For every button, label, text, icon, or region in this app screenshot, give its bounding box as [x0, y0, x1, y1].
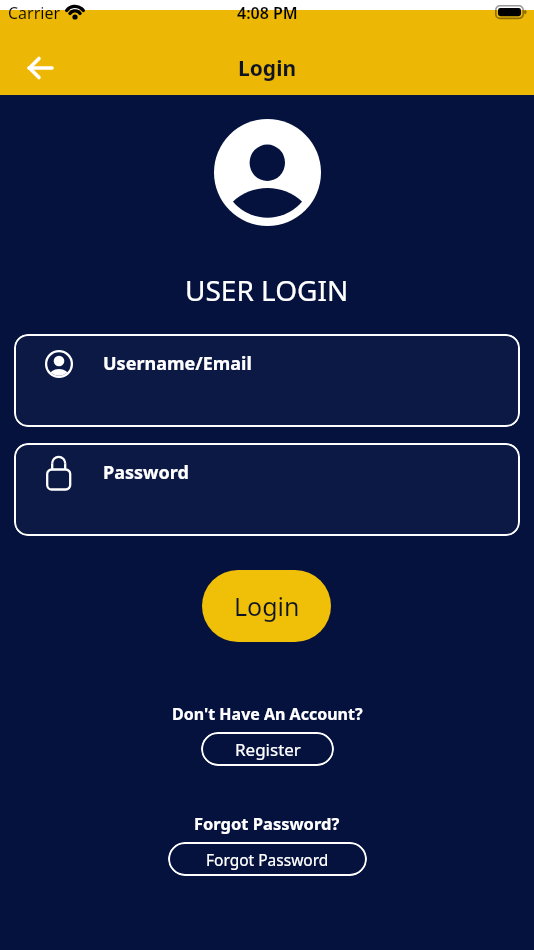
staticText: USER LOGIN: [185, 271, 349, 309]
staticText: Login: [238, 54, 297, 83]
staticText: Register: [235, 738, 301, 761]
staticText: Forgot Password: [206, 849, 329, 870]
staticText: Username/Email: [103, 351, 252, 376]
button[interactable]: Username/Email: [14, 334, 520, 427]
staticText: Password: [103, 460, 189, 485]
button[interactable]: Forgot Password: [168, 842, 367, 876]
button[interactable]: [27, 55, 54, 81]
button[interactable]: Register: [201, 732, 334, 766]
staticText: Forgot Password?: [194, 812, 340, 834]
staticText: Login: [234, 589, 300, 623]
button[interactable]: Password: [14, 443, 520, 536]
staticText: 4:08 PM: [237, 2, 298, 24]
staticText: Don't Have An Account?: [172, 703, 363, 725]
button[interactable]: Login: [202, 570, 331, 642]
staticText: Carrier: [8, 2, 61, 24]
